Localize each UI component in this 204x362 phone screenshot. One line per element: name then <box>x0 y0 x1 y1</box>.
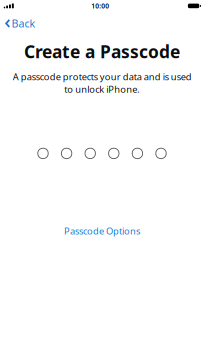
button[interactable]: Back <box>0 12 43 34</box>
staticText: 10:00 <box>91 1 109 10</box>
staticText: Back <box>11 16 35 30</box>
staticText: Create a Passcode <box>24 40 180 63</box>
staticText: Passcode Options <box>64 225 140 237</box>
staticText: A passcode protects your data and is use… <box>12 70 191 95</box>
button[interactable]: Passcode Options <box>52 219 152 243</box>
